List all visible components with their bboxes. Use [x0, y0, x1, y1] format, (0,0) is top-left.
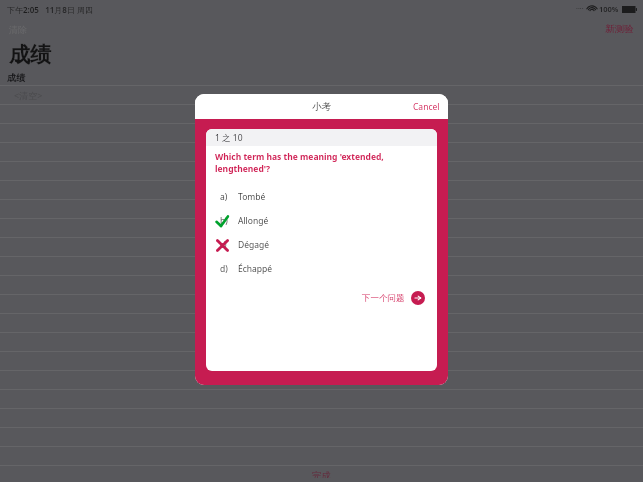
- button[interactable]: [0, 352, 643, 370]
- staticText: ····: [576, 4, 584, 14]
- staticText: 新测验: [605, 23, 634, 35]
- staticText: 1 之 10: [215, 132, 243, 144]
- button[interactable]: 新测验: [599, 21, 643, 37]
- button[interactable]: [0, 276, 643, 294]
- staticText: Which term has the meaning 'extended, le…: [215, 151, 431, 175]
- other: Correct answer: [215, 214, 230, 229]
- button[interactable]: [0, 143, 643, 161]
- staticText: b): [220, 215, 228, 227]
- staticText: Dégagé: [238, 239, 270, 251]
- button[interactable]: [0, 162, 643, 180]
- button[interactable]: [0, 105, 643, 123]
- staticText: <清空>: [14, 89, 43, 101]
- button[interactable]: [0, 181, 643, 199]
- other: Wrong answer: [215, 238, 230, 253]
- staticText: d): [220, 263, 228, 275]
- button[interactable]: [0, 371, 643, 389]
- staticText: a): [220, 191, 228, 203]
- button[interactable]: Cancel: [405, 97, 448, 117]
- button[interactable]: 下一个问题: [206, 291, 437, 305]
- button[interactable]: <清空>: [0, 86, 643, 104]
- button[interactable]: 完成: [296, 466, 347, 482]
- button[interactable]: b): [206, 209, 437, 233]
- button[interactable]: c): [206, 233, 437, 257]
- staticText: 清除: [9, 24, 27, 35]
- button[interactable]: [0, 257, 643, 275]
- staticText: Échappé: [238, 263, 273, 275]
- button[interactable]: 清除: [0, 22, 33, 37]
- button[interactable]: [0, 219, 643, 237]
- staticText: 下一个问题: [362, 293, 405, 304]
- staticText: Allongé: [238, 215, 269, 227]
- staticText: 100%: [599, 4, 619, 14]
- staticText: c): [220, 239, 227, 251]
- button[interactable]: d): [206, 257, 437, 281]
- button[interactable]: a): [206, 185, 437, 209]
- staticText: Tombé: [238, 191, 266, 203]
- button[interactable]: [0, 295, 643, 313]
- staticText: 完成: [312, 470, 331, 478]
- staticText: 成绩: [7, 72, 25, 83]
- staticText: 小考: [312, 101, 331, 113]
- button[interactable]: [0, 238, 643, 256]
- staticText: Cancel: [413, 101, 440, 113]
- staticText: 下午2:05 11月8日 周四: [7, 4, 93, 15]
- button[interactable]: [0, 200, 643, 218]
- button[interactable]: [0, 124, 643, 142]
- button[interactable]: [0, 333, 643, 351]
- staticText: 成绩: [9, 42, 51, 68]
- button[interactable]: [0, 314, 643, 332]
